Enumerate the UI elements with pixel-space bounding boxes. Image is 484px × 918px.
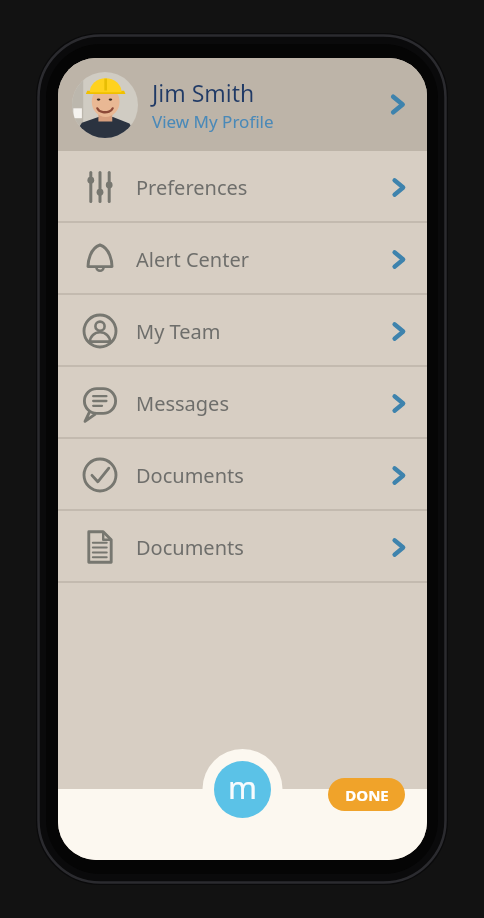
staticText: Documents (136, 462, 386, 489)
staticText: Documents (136, 534, 386, 561)
button[interactable]: Jim Smith (58, 58, 427, 151)
staticText: Preferences (136, 174, 386, 201)
staticText: Alert Center (136, 246, 386, 273)
staticText: View My Profile (152, 110, 274, 133)
button[interactable]: My Team (58, 295, 427, 367)
staticText: m (228, 766, 257, 808)
button[interactable]: Open menu (214, 761, 271, 818)
button[interactable]: Alert Center (58, 223, 427, 295)
staticText: Messages (136, 390, 386, 417)
button[interactable]: Messages (58, 367, 427, 439)
staticText: Jim Smith (152, 77, 255, 108)
button[interactable]: Documents (58, 511, 427, 583)
button[interactable]: Preferences (58, 151, 427, 223)
staticText: DONE (345, 785, 389, 805)
staticText: My Team (136, 318, 386, 345)
button[interactable]: DONE (328, 778, 405, 811)
button[interactable]: Documents (58, 439, 427, 511)
